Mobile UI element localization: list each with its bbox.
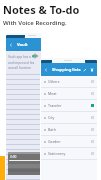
button[interactable]: Bath [41, 124, 97, 135]
other: Delete [90, 68, 94, 72]
staticText: 0:00 [10, 155, 17, 159]
other: Edit [83, 68, 87, 72]
button[interactable]: Stationery [41, 148, 97, 159]
other: Back [9, 43, 13, 47]
button[interactable]: 0:00 [8, 152, 41, 175]
staticText: Others [48, 79, 60, 84]
staticText: With Voice Recording. [3, 19, 67, 27]
staticText: Shopping lists [52, 67, 81, 73]
button[interactable]: Back [41, 63, 97, 76]
staticText: Vault [17, 42, 28, 48]
button[interactable]: Garden [41, 136, 97, 147]
button[interactable]: Meat [41, 88, 97, 99]
staticText: Notes & To-do [3, 2, 80, 17]
staticText: Garden [48, 139, 61, 144]
staticText: Vault app has a n and improved fea overa… [8, 55, 35, 70]
staticText: City [48, 115, 55, 120]
button[interactable]: Traveler [41, 100, 97, 111]
button[interactable]: City [41, 112, 97, 123]
staticText: Meat [48, 91, 57, 96]
staticText: Bath [48, 127, 56, 132]
other: Back [44, 68, 48, 72]
staticText: Stationery [48, 151, 66, 156]
button[interactable]: Back [6, 38, 41, 51]
button[interactable]: Others [41, 76, 97, 87]
staticText: Traveler [48, 103, 62, 108]
